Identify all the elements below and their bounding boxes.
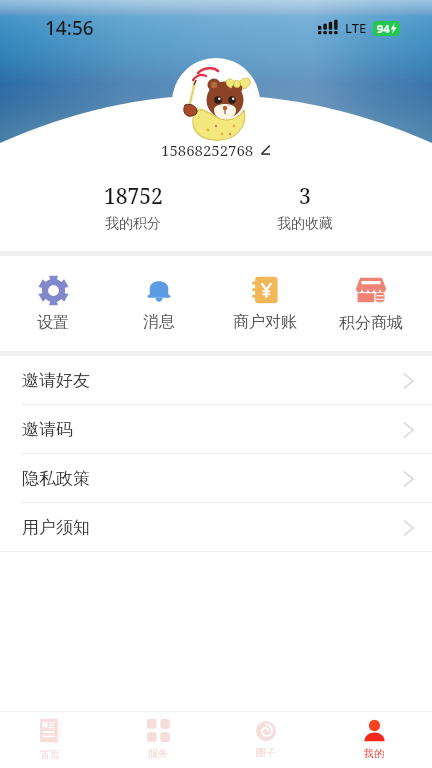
staticText: 服务 [148,747,168,760]
button[interactable]: 商户对账 [212,256,318,351]
staticText: 我的积分 [105,215,161,233]
button[interactable]: 3 [245,182,365,233]
button[interactable]: 首页 [0,711,104,768]
staticText: 3 [299,182,311,211]
button[interactable]: 服务 [104,711,212,768]
button[interactable]: 积分商城 [318,256,424,351]
staticText: 14:56 [45,15,94,41]
staticText: 用户须知 [22,517,90,538]
button[interactable]: 邀请码 [0,405,432,454]
staticText: 我的收藏 [277,215,333,233]
staticText: 隐私政策 [22,468,90,489]
staticText: 商户对账 [233,312,297,332]
button[interactable]: 用户须知 [0,503,432,552]
staticText: 消息 [143,312,175,332]
button[interactable]: Profile photo [172,58,260,146]
button[interactable]: 18752 [73,182,193,233]
staticText: 首页 [40,748,60,761]
staticText: 94 [377,21,390,36]
button[interactable]: 圈子 [212,711,320,768]
staticText: 15868252768 [161,140,254,160]
button[interactable]: 消息 [106,256,212,351]
staticText: 积分商城 [339,313,403,333]
button[interactable]: 邀请好友 [0,356,432,405]
staticText: 设置 [37,313,69,333]
button[interactable]: 15868252768 [161,140,271,160]
staticText: 圈子 [256,746,276,759]
button[interactable]: 隐私政策 [0,454,432,503]
staticText: 18752 [104,182,163,211]
button[interactable]: 我的 [320,711,428,768]
staticText: 我的 [364,747,384,760]
button[interactable]: 设置 [0,256,106,351]
staticText: 邀请好友 [22,370,90,391]
staticText: LTE [345,19,367,37]
staticText: 邀请码 [22,419,73,440]
